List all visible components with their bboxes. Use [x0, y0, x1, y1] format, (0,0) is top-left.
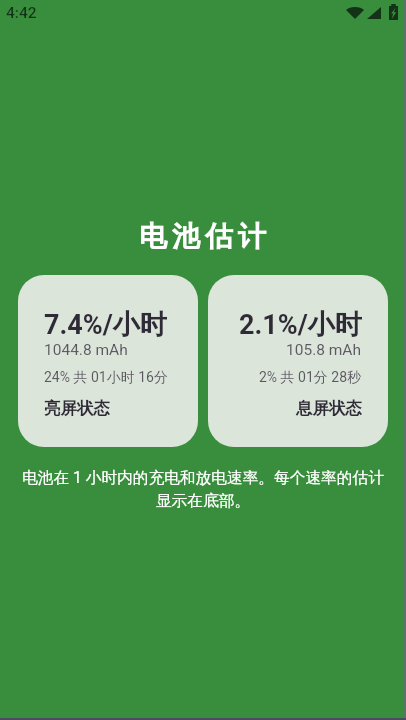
- staticText: 7.4%/小时: [44, 308, 167, 342]
- staticText: 息屏状态: [296, 398, 362, 419]
- button[interactable]: 2.1%/小时: [208, 275, 388, 447]
- other: Mobile signal: [367, 7, 381, 19]
- staticText: 4:42: [6, 4, 37, 22]
- staticText: 1044.8 mAh: [44, 341, 128, 359]
- staticText: 24% 共 01小时 16分: [44, 369, 168, 387]
- staticText: 电池在 1 小时内的充电和放电速率。每个速率的估计显示在底部。: [17, 468, 389, 511]
- staticText: 2% 共 01分 28秒: [259, 369, 362, 387]
- button[interactable]: 7.4%/小时: [18, 275, 198, 447]
- staticText: 105.8 mAh: [286, 341, 362, 359]
- staticText: 2.1%/小时: [239, 308, 362, 342]
- staticText: 电池估计: [2, 219, 406, 254]
- other: Wi-Fi: [346, 6, 364, 19]
- staticText: 亮屏状态: [44, 398, 110, 419]
- other: Battery charging: [389, 4, 398, 20]
